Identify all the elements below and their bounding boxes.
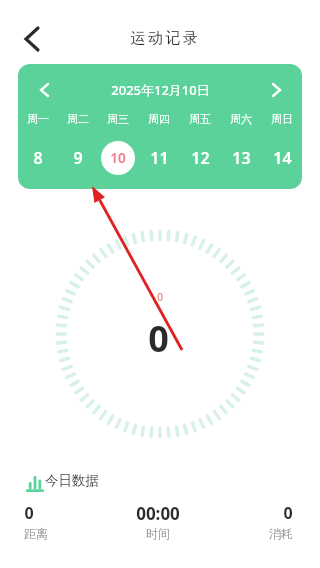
- staticText: 12: [191, 147, 210, 169]
- staticText: 周六: [230, 112, 252, 126]
- staticText: 9: [73, 147, 83, 169]
- button[interactable]: 13: [224, 141, 258, 175]
- button[interactable]: [34, 80, 54, 100]
- staticText: 0: [157, 290, 163, 304]
- button[interactable]: 10: [101, 141, 135, 175]
- button[interactable]: 14: [265, 141, 299, 175]
- staticText: 消耗: [269, 526, 293, 541]
- button[interactable]: 今日数据: [26, 468, 99, 493]
- staticText: 11: [150, 147, 169, 169]
- staticText: 8: [33, 147, 43, 169]
- staticText: 10: [110, 149, 126, 167]
- staticText: 0: [148, 314, 169, 363]
- staticText: 2025年12月10日: [111, 81, 210, 99]
- staticText: 周五: [189, 112, 211, 126]
- button[interactable]: [266, 80, 286, 100]
- staticText: 14: [273, 147, 292, 169]
- button[interactable]: [16, 24, 48, 54]
- staticText: 周一: [27, 112, 49, 126]
- staticText: 周二: [67, 112, 89, 126]
- staticText: 00:00: [136, 502, 180, 525]
- button[interactable]: 11: [142, 141, 176, 175]
- staticText: 周三: [107, 112, 129, 126]
- staticText: 周日: [271, 112, 293, 126]
- staticText: 运动记录: [129, 29, 199, 48]
- staticText: 时间: [146, 526, 170, 541]
- staticText: 0: [283, 502, 293, 524]
- staticText: 距离: [24, 526, 48, 541]
- staticText: 今日数据: [45, 472, 99, 489]
- button[interactable]: 9: [61, 141, 95, 175]
- staticText: 13: [232, 147, 251, 169]
- button[interactable]: 12: [183, 141, 217, 175]
- staticText: 0: [24, 502, 34, 524]
- button[interactable]: 8: [21, 141, 55, 175]
- staticText: 周四: [148, 112, 170, 126]
